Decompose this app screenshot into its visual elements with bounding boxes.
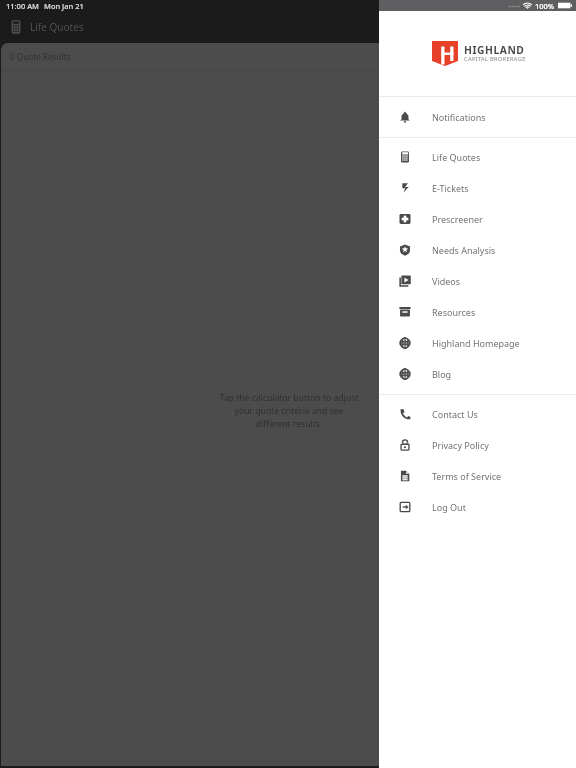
staticText: Terms of Service: [432, 470, 502, 482]
staticText: Tap the calculator button to adjust your…: [204, 392, 374, 430]
button[interactable]: Blog: [379, 358, 576, 389]
button[interactable]: Resources: [379, 296, 576, 327]
staticText: Mon Jan 21: [44, 1, 84, 11]
staticText: Needs Analysis: [432, 244, 496, 256]
staticText: 0 Quote Results: [10, 51, 71, 62]
button[interactable]: Life Quotes: [379, 141, 576, 172]
button[interactable]: Terms of Service: [379, 460, 576, 491]
button[interactable]: Videos: [379, 265, 576, 296]
staticText: Life Quotes: [432, 151, 481, 163]
button[interactable]: Privacy Policy: [379, 429, 576, 460]
staticText: 11:00 AM: [6, 1, 39, 11]
staticText: Notifications: [432, 111, 486, 123]
staticText: CAPITAL BROKERAGE: [464, 55, 526, 63]
staticText: Videos: [432, 275, 461, 287]
button[interactable]: Needs Analysis: [379, 234, 576, 265]
button[interactable]: Contact Us: [379, 398, 576, 429]
button[interactable]: Log Out: [379, 491, 576, 522]
staticText: Privacy Policy: [432, 439, 489, 451]
staticText: Contact Us: [432, 408, 478, 420]
staticText: Log Out: [432, 501, 466, 513]
staticText: Prescreener: [432, 213, 483, 225]
staticText: E-Tickets: [432, 182, 469, 194]
button[interactable]: Notifications: [379, 101, 576, 132]
staticText: Resources: [432, 306, 476, 318]
button[interactable]: Prescreener: [379, 203, 576, 234]
button[interactable]: Highland Homepage: [379, 327, 576, 358]
staticText: Life Quotes: [30, 20, 84, 34]
staticText: 100%: [535, 1, 555, 11]
button[interactable]: E-Tickets: [379, 172, 576, 203]
staticText: Blog: [432, 368, 452, 380]
button[interactable]: Quote calculator: [11, 20, 21, 34]
button[interactable]: Close navigation drawer: [0, 0, 576, 768]
staticText: Highland Homepage: [432, 337, 520, 349]
staticText: HIGHLAND: [464, 43, 525, 57]
